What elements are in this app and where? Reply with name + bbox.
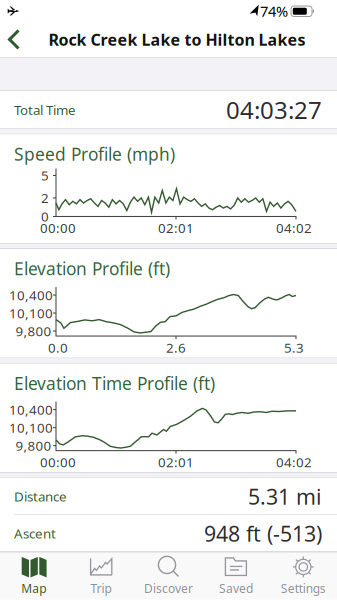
staticText: 9,800 — [15, 322, 51, 340]
staticText: 10,100 — [9, 304, 53, 322]
staticText: 0 — [41, 208, 49, 225]
staticText: 02:01 — [158, 219, 194, 237]
staticText: 10,400 — [9, 401, 53, 418]
staticText: Distance — [14, 487, 67, 505]
staticText: 04:03:27 — [226, 94, 322, 126]
staticText: 9,800 — [15, 437, 51, 454]
staticText: 2 — [41, 189, 49, 207]
staticText: Saved — [219, 580, 253, 596]
staticText: 5.3 — [284, 339, 304, 356]
button[interactable]: Discover — [135, 553, 202, 599]
button[interactable]: Map — [0, 553, 67, 599]
staticText: 02:01 — [158, 453, 194, 471]
staticText: 0.0 — [48, 339, 68, 356]
button[interactable]: Back — [0, 22, 28, 56]
staticText: 00:00 — [40, 453, 76, 471]
staticText: 948 ft (-513) — [204, 519, 322, 547]
staticText: Speed Profile (mph) — [14, 142, 175, 165]
staticText: 5.31 mi — [248, 482, 322, 510]
staticText: Total Time — [14, 101, 76, 119]
staticText: 10,100 — [9, 419, 53, 436]
staticText: Map — [21, 580, 46, 596]
staticText: 2.6 — [166, 339, 186, 356]
staticText: 04:02 — [276, 453, 312, 471]
staticText: Rock Creek Lake to Hilton Lakes — [48, 29, 305, 50]
staticText: 5 — [41, 167, 49, 184]
staticText: 10,400 — [9, 286, 53, 304]
button[interactable]: Settings — [270, 553, 337, 599]
staticText: 74% — [260, 1, 288, 21]
staticText: Discover — [144, 580, 193, 596]
staticText: Elevation Profile (ft) — [14, 257, 170, 280]
staticText: 04:02 — [276, 219, 312, 237]
staticText: Settings — [281, 580, 326, 596]
button[interactable]: Trip — [67, 553, 135, 599]
staticText: Elevation Time Profile (ft) — [14, 372, 215, 395]
staticText: Trip — [91, 580, 112, 596]
staticText: Ascent — [14, 524, 56, 542]
button[interactable]: Saved — [202, 553, 270, 599]
staticText: 00:00 — [40, 219, 76, 237]
